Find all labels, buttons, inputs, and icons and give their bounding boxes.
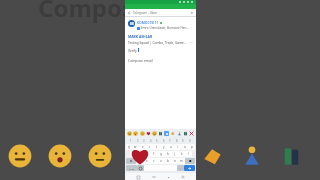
button[interactable]: s: [136, 151, 143, 157]
staticText: n: [174, 159, 176, 163]
staticText: y: [163, 145, 165, 149]
button[interactable]: l: [185, 151, 192, 157]
staticText: f: [153, 152, 155, 156]
button[interactable]: f: [150, 151, 157, 157]
button[interactable]: Send: [184, 165, 195, 171]
button[interactable]: a: [130, 151, 136, 157]
button[interactable]: o: [181, 144, 188, 150]
button[interactable]: i: [174, 144, 181, 150]
staticText: o: [184, 145, 186, 149]
button[interactable]: 1: [130, 139, 132, 143]
button[interactable]: q: [126, 144, 132, 150]
staticText: Compose email: [128, 58, 153, 63]
staticText: j: [174, 152, 175, 156]
staticText: x: [146, 159, 148, 163]
button[interactable]: t: [153, 144, 160, 150]
staticText: Telegram – New: [133, 11, 157, 15]
button[interactable]: g: [157, 151, 164, 157]
button[interactable]: Emoji: [137, 165, 144, 171]
button[interactable]: z: [136, 158, 143, 164]
button[interactable]: u: [167, 144, 174, 150]
staticText: b: [167, 159, 169, 163]
button[interactable]: c: [150, 158, 157, 164]
button[interactable]: Recents: [136, 175, 140, 179]
button[interactable]: n: [171, 158, 178, 164]
button[interactable]: y: [160, 144, 167, 150]
staticText: · · ·: [189, 41, 193, 45]
staticText: c: [153, 159, 155, 163]
button[interactable]: 4: [150, 139, 152, 143]
staticText: e: [142, 145, 144, 149]
button[interactable]: 3: [143, 139, 145, 143]
staticText: q: [128, 145, 130, 149]
other: Menu: [190, 11, 194, 15]
button[interactable]: 2: [137, 139, 139, 143]
button[interactable]: Backspace: [185, 158, 195, 164]
staticText: .: [180, 166, 181, 170]
staticText: v: [160, 159, 162, 163]
staticText: MARK ASHLAR: [128, 34, 153, 39]
staticText: p: [191, 145, 193, 149]
button[interactable]: d: [143, 151, 150, 157]
staticText: Testing Squad | Combo, Trade, Game...: [128, 41, 188, 45]
button[interactable]: w: [132, 144, 139, 150]
staticText: u: [170, 145, 172, 149]
other: Back: [127, 11, 131, 15]
button[interactable]: x: [143, 158, 150, 164]
button[interactable]: 0: [189, 139, 191, 143]
button[interactable]: 7: [169, 139, 171, 143]
button[interactable]: Shift: [126, 158, 136, 164]
staticText: t: [156, 145, 158, 149]
staticText: KOMOCTB 11: [137, 20, 159, 25]
staticText: Verify: [128, 48, 137, 52]
staticText: g: [160, 152, 162, 156]
button[interactable]: Home: [181, 175, 185, 179]
button[interactable]: j: [171, 151, 178, 157]
button[interactable]: r: [146, 144, 153, 150]
staticText: h: [167, 152, 169, 156]
staticText: w: [134, 145, 137, 149]
staticText: M: [130, 21, 134, 26]
button[interactable]: e: [139, 144, 146, 150]
button[interactable]: m: [178, 158, 185, 164]
button[interactable]: 8: [176, 139, 178, 143]
button[interactable]: k: [178, 151, 185, 157]
staticText: Emre Uremdaset, Bumtare Hen...: [141, 26, 189, 30]
button[interactable]: Back: [125, 9, 196, 16]
staticText: r: [149, 145, 151, 149]
button[interactable]: ?123: [126, 165, 137, 171]
button[interactable]: Keyboard: [151, 174, 156, 179]
button[interactable]: v: [157, 158, 164, 164]
button[interactable]: b: [164, 158, 171, 164]
staticText: l: [188, 152, 189, 156]
button[interactable]: h: [164, 151, 171, 157]
button[interactable]: p: [188, 144, 195, 150]
button[interactable]: M: [128, 20, 193, 30]
button[interactable]: .: [177, 165, 184, 171]
staticText: ?123: [129, 167, 135, 170]
button[interactable]: 9: [182, 139, 184, 143]
staticText: k: [181, 152, 183, 156]
button[interactable]: 5: [156, 139, 158, 143]
staticText: Compose em: [38, 0, 193, 24]
button[interactable]: 6: [163, 139, 165, 143]
staticText: m: [180, 159, 183, 163]
staticText: i: [177, 145, 178, 149]
button[interactable]: Back: [166, 175, 170, 179]
